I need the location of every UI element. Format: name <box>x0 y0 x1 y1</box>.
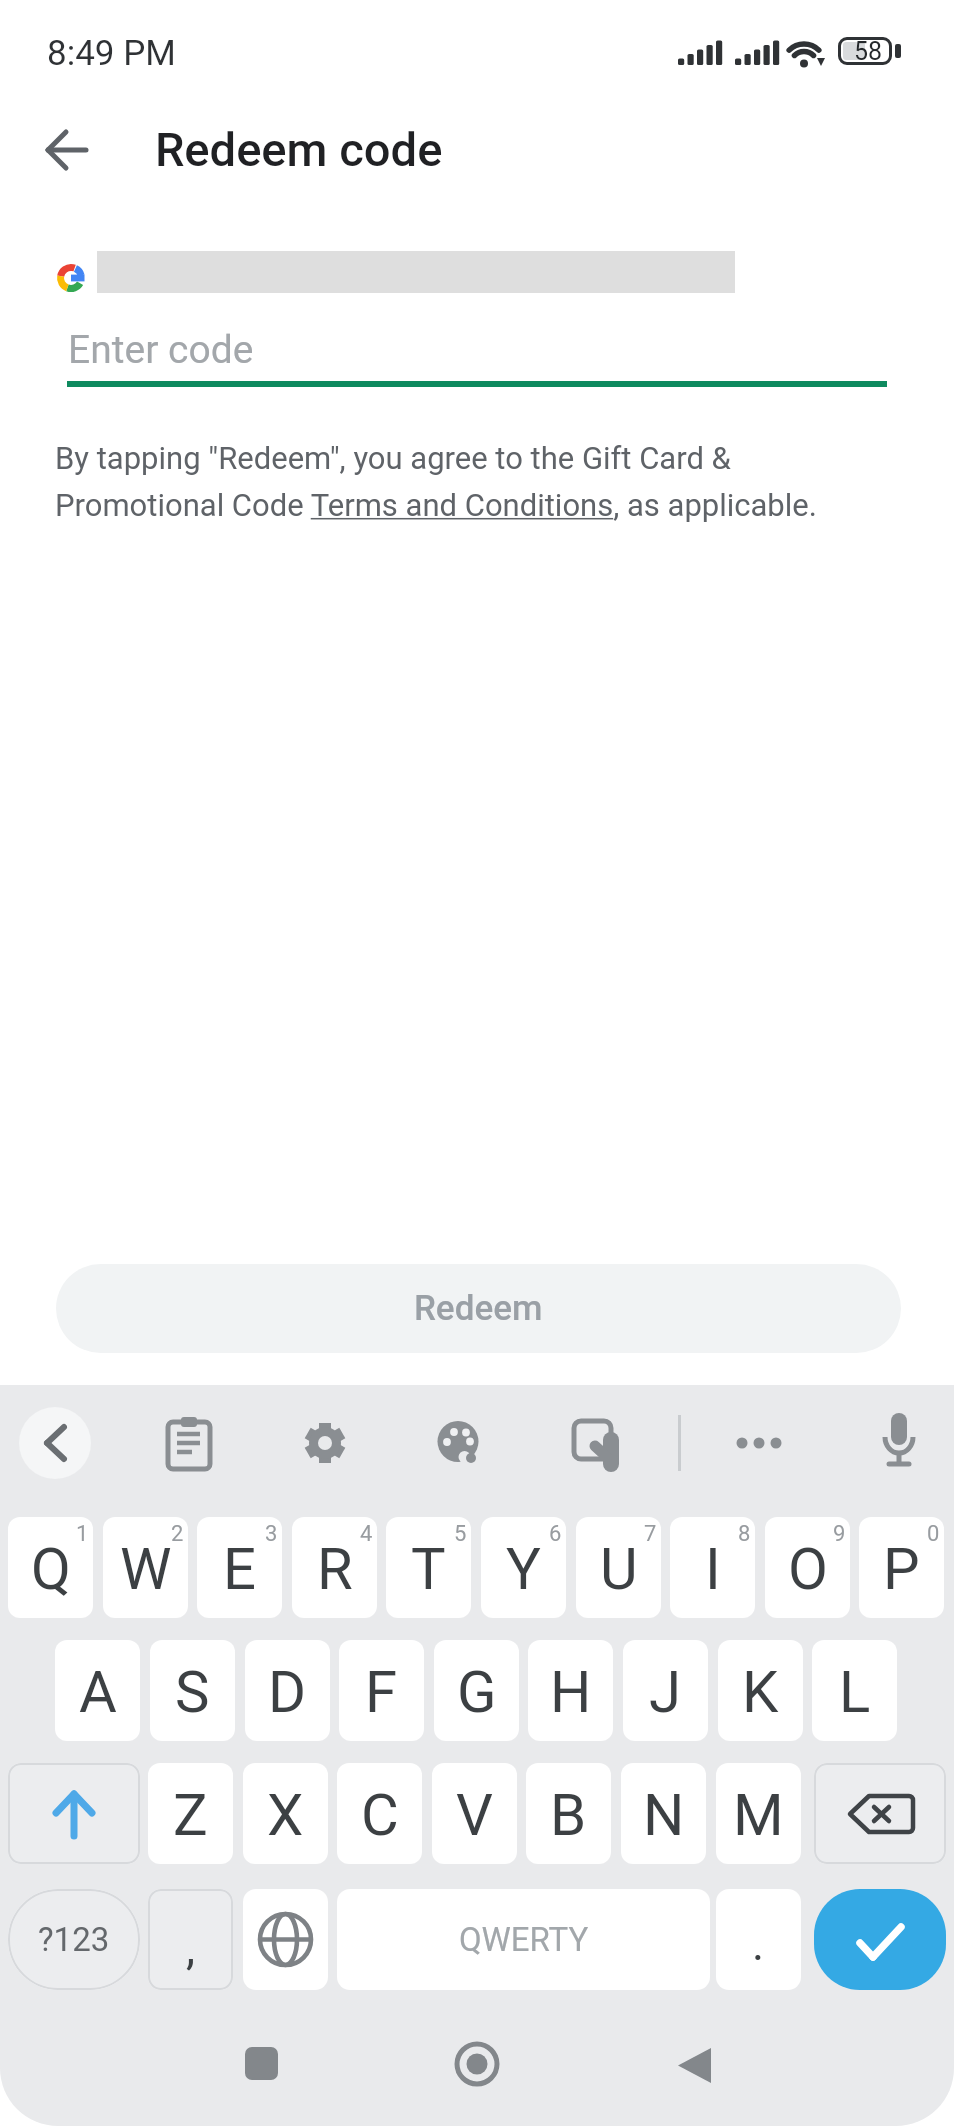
button[interactable]: N <box>621 1763 706 1864</box>
staticText: QWERTY <box>459 1920 589 1959</box>
staticText: Z <box>173 1781 208 1849</box>
staticText: X <box>267 1781 304 1849</box>
button[interactable] <box>28 112 104 188</box>
button[interactable] <box>166 1417 212 1471</box>
staticText: Y <box>506 1535 541 1603</box>
staticText: P <box>883 1535 920 1603</box>
staticText: Enter code <box>68 327 254 373</box>
button[interactable]: G <box>434 1640 519 1741</box>
staticText: 5 <box>454 1521 467 1547</box>
button[interactable]: C <box>337 1763 422 1864</box>
staticText: C <box>361 1781 399 1849</box>
button[interactable]: B <box>526 1763 611 1864</box>
button[interactable]: Z <box>148 1763 233 1864</box>
staticText: R <box>317 1535 353 1603</box>
staticText: I <box>705 1535 721 1603</box>
button[interactable] <box>453 2040 501 2088</box>
button[interactable] <box>678 2048 712 2083</box>
staticText: Redeem <box>414 1288 543 1329</box>
button[interactable]: S <box>150 1640 235 1741</box>
button[interactable]: A <box>55 1640 140 1741</box>
button[interactable]: H <box>528 1640 613 1741</box>
button[interactable]: . <box>716 1889 801 1990</box>
button[interactable]: T <box>386 1517 471 1618</box>
staticText: N <box>643 1781 685 1849</box>
staticText: D <box>268 1658 307 1726</box>
staticText: O <box>788 1535 828 1603</box>
button[interactable]: ?123 <box>8 1889 140 1990</box>
button[interactable]: Q <box>8 1517 93 1618</box>
button[interactable]: W <box>103 1517 188 1618</box>
staticText: G <box>457 1658 497 1726</box>
button[interactable]: I <box>670 1517 755 1618</box>
staticText: M <box>733 1781 784 1849</box>
button[interactable]: O <box>765 1517 850 1618</box>
button[interactable]: Redeem <box>56 1264 901 1353</box>
button[interactable]: Y <box>481 1517 566 1618</box>
button[interactable] <box>19 1407 91 1479</box>
staticText: 2 <box>171 1521 184 1547</box>
staticText: 3 <box>265 1521 278 1547</box>
staticText: S <box>175 1658 210 1726</box>
staticText: F <box>365 1658 398 1726</box>
staticText: 58 <box>854 37 883 65</box>
staticText: 8:49 PM <box>47 33 176 74</box>
button[interactable]: V <box>432 1763 517 1864</box>
staticText: U <box>600 1535 638 1603</box>
staticText: 4 <box>360 1521 373 1547</box>
staticText: H <box>550 1658 592 1726</box>
staticText: 1 <box>76 1521 89 1547</box>
button[interactable] <box>299 1417 351 1469</box>
button[interactable] <box>243 1889 328 1990</box>
button[interactable]: , <box>148 1889 233 1990</box>
staticText: V <box>456 1781 493 1849</box>
button[interactable] <box>814 1763 946 1864</box>
staticText: B <box>550 1781 587 1849</box>
button[interactable]: L <box>812 1640 897 1741</box>
button[interactable]: R <box>292 1517 377 1618</box>
staticText: T <box>411 1535 446 1603</box>
staticText: W <box>120 1535 172 1603</box>
staticText: K <box>742 1658 779 1726</box>
staticText: 8 <box>738 1521 751 1547</box>
button[interactable]: J <box>623 1640 708 1741</box>
staticText: J <box>649 1658 682 1726</box>
button[interactable] <box>814 1889 946 1990</box>
staticText: Q <box>31 1535 71 1603</box>
staticText: 9 <box>833 1521 846 1547</box>
staticText: L <box>839 1658 871 1726</box>
staticText: A <box>79 1658 117 1726</box>
staticText: By tapping "Redeem", you agree to the Gi… <box>55 440 817 524</box>
button[interactable] <box>437 1421 481 1463</box>
staticText: E <box>223 1535 256 1603</box>
button[interactable] <box>245 2047 278 2080</box>
button[interactable]: P <box>859 1517 944 1618</box>
button[interactable]: U <box>576 1517 661 1618</box>
button[interactable] <box>8 1763 140 1864</box>
staticText: Redeem code <box>155 122 443 177</box>
staticText: . <box>752 1917 765 1971</box>
button[interactable] <box>736 1437 788 1449</box>
button[interactable]: D <box>245 1640 330 1741</box>
button[interactable] <box>879 1413 919 1473</box>
button[interactable]: X <box>243 1763 328 1864</box>
staticText: 0 <box>927 1521 940 1547</box>
staticText: ?123 <box>38 1920 110 1959</box>
staticText: 6 <box>549 1521 562 1547</box>
button[interactable]: K <box>718 1640 803 1741</box>
button[interactable]: QWERTY <box>337 1889 710 1990</box>
button[interactable]: M <box>716 1763 801 1864</box>
button[interactable] <box>574 1421 624 1467</box>
staticText: 7 <box>644 1521 657 1547</box>
button[interactable]: F <box>339 1640 424 1741</box>
button[interactable]: E <box>197 1517 282 1618</box>
staticText: , <box>186 1921 196 1975</box>
